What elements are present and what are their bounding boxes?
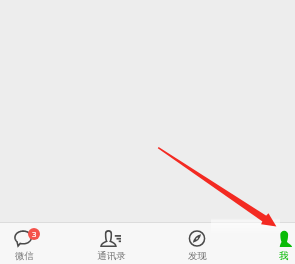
button[interactable]: Me xyxy=(253,223,295,264)
staticText: 3 xyxy=(32,229,37,240)
button[interactable]: WeChat chats xyxy=(0,223,55,264)
staticText: 通讯录 xyxy=(97,250,126,262)
staticText: 发现 xyxy=(188,250,207,262)
staticText: 微信 xyxy=(15,250,34,262)
staticText: 我 xyxy=(279,250,289,262)
button[interactable]: Discover xyxy=(166,223,228,264)
button[interactable]: Contacts xyxy=(80,223,142,264)
